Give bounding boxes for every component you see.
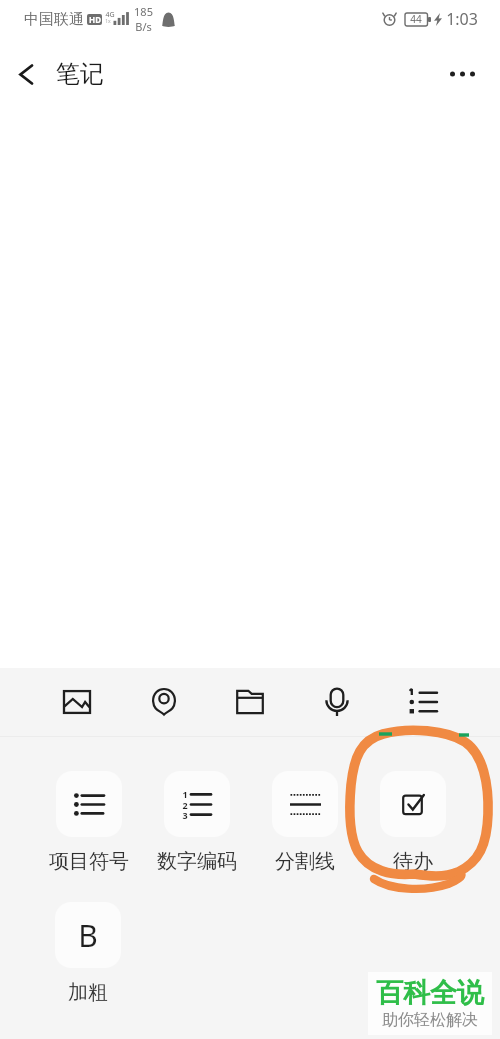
button[interactable]: Back (8, 56, 44, 92)
staticText: B/s (135, 19, 152, 34)
staticText: 185 (134, 4, 153, 19)
button[interactable]: 待办 (359, 771, 467, 874)
staticText: B (78, 915, 98, 956)
button[interactable]: Folder (230, 682, 270, 722)
staticText: 助你轻松解决 (382, 1010, 478, 1030)
staticText: 4G (105, 10, 115, 20)
staticText: 数字编码 (157, 849, 237, 874)
staticText: 中国联通 (24, 10, 84, 29)
staticText: 3 (182, 809, 188, 819)
staticText: 44 (410, 12, 422, 26)
staticText: 待办 (393, 849, 433, 874)
button[interactable]: Insert image (57, 682, 97, 722)
staticText: 百科全说 (376, 976, 484, 1010)
staticText: 1x (105, 18, 111, 25)
staticText: 笔记 (56, 59, 104, 89)
button[interactable]: B (34, 902, 142, 1005)
button[interactable]: 项目符号 (34, 771, 143, 874)
staticText: 分割线 (275, 849, 335, 874)
button[interactable]: Location (144, 682, 184, 722)
button[interactable]: Voice (317, 682, 357, 722)
staticText: 2 (182, 799, 188, 809)
button[interactable]: More options (442, 54, 482, 94)
button[interactable]: List style (403, 682, 443, 722)
staticText: 1 (182, 788, 188, 798)
button[interactable]: 分割线 (251, 771, 359, 874)
staticText: 加粗 (68, 980, 108, 1005)
staticText: 项目符号 (49, 849, 129, 874)
staticText: HD (89, 14, 101, 25)
staticText: 1:03 (446, 8, 478, 30)
button[interactable]: 1 (143, 771, 251, 874)
